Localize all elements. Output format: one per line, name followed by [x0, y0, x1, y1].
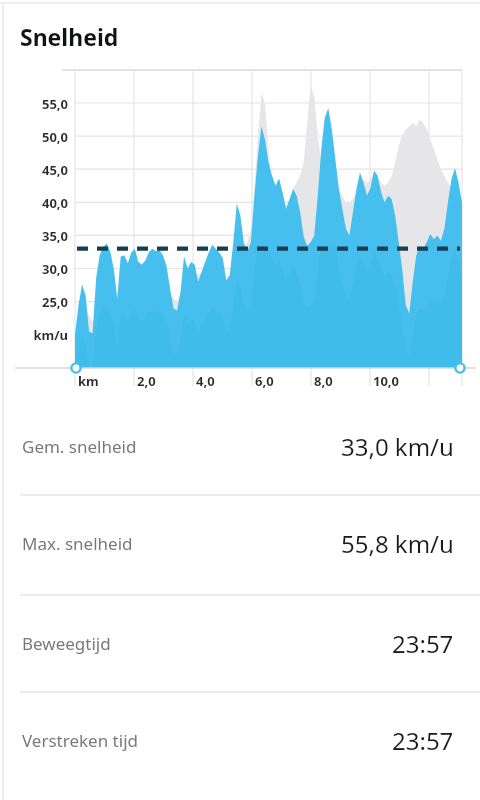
staticText: 8,0 [314, 372, 366, 390]
staticText: Max. snelheid [22, 532, 133, 555]
staticText: km [78, 372, 130, 390]
button[interactable]: Beweegtijd [0, 595, 480, 692]
staticText: 23:57 [392, 724, 454, 757]
staticText: Beweegtijd [22, 632, 111, 655]
staticText: km/u [8, 326, 68, 344]
staticText: 40,0 [8, 194, 68, 212]
staticText: 4,0 [196, 372, 248, 390]
staticText: 33,0 km/u [341, 430, 454, 463]
staticText: 10,0 [373, 372, 425, 390]
staticText: 55,8 km/u [341, 527, 454, 560]
staticText: 23:57 [392, 627, 454, 660]
staticText: Verstreken tijd [22, 729, 138, 752]
staticText: Snelheid [20, 21, 119, 52]
staticText: 35,0 [8, 227, 68, 245]
staticText: 55,0 [8, 95, 68, 113]
staticText: 6,0 [255, 372, 307, 390]
staticText: 2,0 [137, 372, 189, 390]
staticText: 30,0 [8, 260, 68, 278]
button[interactable]: Gem. snelheid [0, 398, 480, 495]
button[interactable]: Verstreken tijd [0, 692, 480, 789]
staticText: 50,0 [8, 128, 68, 146]
button[interactable]: Max. snelheid [0, 495, 480, 592]
other: Snelheid grafiek [0, 0, 480, 800]
staticText: Gem. snelheid [22, 435, 137, 458]
staticText: 45,0 [8, 161, 68, 179]
staticText: 25,0 [8, 293, 68, 311]
